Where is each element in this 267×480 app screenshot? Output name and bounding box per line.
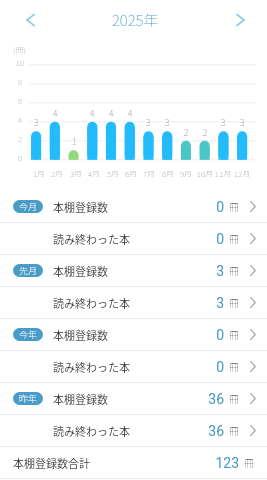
other: Open details: [250, 201, 256, 212]
staticText: 冊: [229, 359, 239, 373]
staticText: 4: [83, 107, 101, 120]
other: Open details: [250, 233, 256, 244]
staticText: 4月: [83, 168, 105, 180]
button[interactable]: 先月: [0, 255, 267, 286]
staticText: 3月: [65, 168, 87, 180]
staticText: 9月: [175, 168, 197, 180]
staticText: 冊: [229, 231, 239, 245]
staticText: 2月: [46, 168, 68, 180]
staticText: 36: [164, 423, 224, 439]
staticText: (冊): [13, 44, 26, 56]
staticText: 0: [164, 199, 224, 215]
staticText: 冊: [244, 455, 254, 469]
staticText: 5月: [102, 168, 124, 180]
staticText: 冊: [229, 423, 239, 437]
staticText: 2: [177, 126, 195, 139]
staticText: 3: [233, 116, 251, 129]
button[interactable]: 今月: [0, 191, 267, 222]
staticText: 先月: [19, 264, 38, 277]
staticText: 8: [9, 76, 31, 88]
staticText: 本棚登録数: [53, 391, 108, 407]
staticText: 6: [9, 95, 31, 107]
staticText: 123: [179, 455, 239, 471]
button[interactable]: 読み終わった本: [0, 287, 267, 318]
other: Open details: [250, 393, 256, 404]
other: Open details: [250, 361, 256, 372]
staticText: 本棚登録数: [53, 263, 108, 279]
staticText: 冊: [229, 327, 239, 341]
staticText: 読み終わった本: [53, 231, 130, 247]
other: Open details: [250, 297, 256, 308]
staticText: 8月: [157, 168, 179, 180]
staticText: 3: [158, 116, 176, 129]
staticText: 読み終わった本: [53, 359, 130, 375]
button[interactable]: 読み終わった本: [0, 415, 267, 446]
staticText: 冊: [229, 295, 239, 309]
staticText: 36: [164, 391, 224, 407]
staticText: 今月: [19, 200, 38, 213]
staticText: 本棚登録数合計: [13, 455, 90, 471]
staticText: 0: [164, 327, 224, 343]
other: Open details: [250, 265, 256, 276]
staticText: 読み終わった本: [53, 295, 130, 311]
staticText: 2025年: [112, 9, 159, 31]
staticText: 4: [9, 114, 31, 126]
staticText: 3: [164, 295, 224, 311]
staticText: 6月: [120, 168, 142, 180]
staticText: 3: [27, 116, 45, 129]
staticText: 今年: [19, 328, 38, 341]
staticText: 4: [102, 107, 120, 120]
staticText: 2: [9, 133, 31, 145]
staticText: 冊: [229, 391, 239, 405]
staticText: 2: [196, 126, 214, 139]
staticText: 0: [164, 231, 224, 247]
button[interactable]: 読み終わった本: [0, 223, 267, 254]
staticText: 7月: [138, 168, 160, 180]
staticText: 冊: [229, 199, 239, 213]
other: Open details: [250, 425, 256, 436]
button[interactable]: Previous year: [15, 5, 45, 35]
staticText: 0: [9, 152, 31, 164]
staticText: 3: [139, 116, 157, 129]
staticText: 12月: [231, 168, 253, 180]
staticText: 昨年: [19, 392, 38, 405]
staticText: 3: [164, 263, 224, 279]
staticText: 1: [65, 135, 83, 148]
staticText: 3: [214, 116, 232, 129]
staticText: 10: [9, 57, 31, 69]
staticText: 4: [121, 107, 139, 120]
staticText: 冊: [229, 263, 239, 277]
button[interactable]: 読み終わった本: [0, 351, 267, 382]
button[interactable]: 今年: [0, 319, 267, 350]
button[interactable]: 昨年: [0, 383, 267, 414]
staticText: 0: [164, 359, 224, 375]
staticText: 本棚登録数: [53, 327, 108, 343]
staticText: 1月: [28, 168, 50, 180]
staticText: 11月: [212, 168, 234, 180]
button[interactable]: Next year: [225, 5, 255, 35]
button[interactable]: 本棚登録数合計: [0, 447, 267, 478]
staticText: 10月: [194, 168, 216, 180]
staticText: 本棚登録数: [53, 199, 108, 215]
staticText: 読み終わった本: [53, 423, 130, 439]
other: Open details: [250, 329, 256, 340]
staticText: 4: [46, 107, 64, 120]
